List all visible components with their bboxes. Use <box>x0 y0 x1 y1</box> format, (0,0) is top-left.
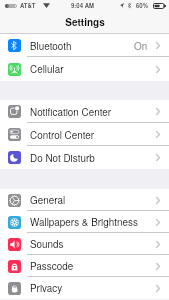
staticText: Sounds <box>30 237 64 251</box>
button[interactable]: Do Not Disturb <box>0 146 169 169</box>
staticText: Cellular <box>30 62 64 76</box>
staticText: 60% <box>136 1 149 10</box>
button[interactable]: Passcode <box>0 255 169 277</box>
staticText: Settings <box>65 15 105 29</box>
button[interactable]: Control Center <box>0 123 169 146</box>
staticText: 9:04 AM <box>71 1 95 10</box>
button[interactable]: Wallpapers & Brightness <box>0 211 169 233</box>
button[interactable]: Notification Center <box>0 100 169 123</box>
staticText: Privacy <box>30 281 63 295</box>
staticText: Bluetooth <box>30 39 72 53</box>
button[interactable]: Privacy <box>0 277 169 299</box>
staticText: General <box>30 193 66 207</box>
staticText: Control Center <box>30 128 95 142</box>
staticText: Do Not Disturb <box>30 151 95 165</box>
staticText: Passcode <box>30 259 74 273</box>
button[interactable]: General <box>0 189 169 211</box>
button[interactable]: Cellular <box>0 57 169 81</box>
button[interactable]: Bluetooth <box>0 34 169 57</box>
staticText: Wallpapers & Brightness <box>30 215 138 229</box>
staticText: Notification Center <box>30 105 112 119</box>
staticText: AT&T <box>20 1 36 10</box>
button[interactable]: Sounds <box>0 233 169 255</box>
staticText: On <box>134 39 148 53</box>
